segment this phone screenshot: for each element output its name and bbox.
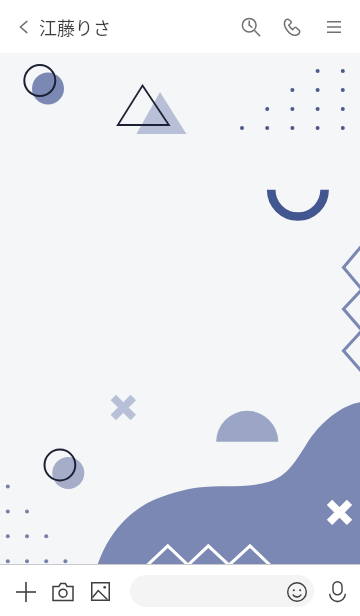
- button[interactable]: Camera: [47, 576, 78, 607]
- button[interactable]: Emoji: [281, 576, 312, 607]
- button[interactable]: Call: [273, 8, 311, 46]
- button[interactable]: Gallery: [85, 576, 116, 607]
- staticText: 江藤りさ: [39, 14, 111, 40]
- button[interactable]: Message input: [130, 575, 314, 607]
- button[interactable]: Menu: [315, 8, 353, 46]
- button[interactable]: Add: [10, 576, 41, 607]
- button[interactable]: Back: [1, 7, 41, 47]
- button[interactable]: Search: [232, 8, 270, 46]
- button[interactable]: Voice message: [322, 576, 353, 607]
